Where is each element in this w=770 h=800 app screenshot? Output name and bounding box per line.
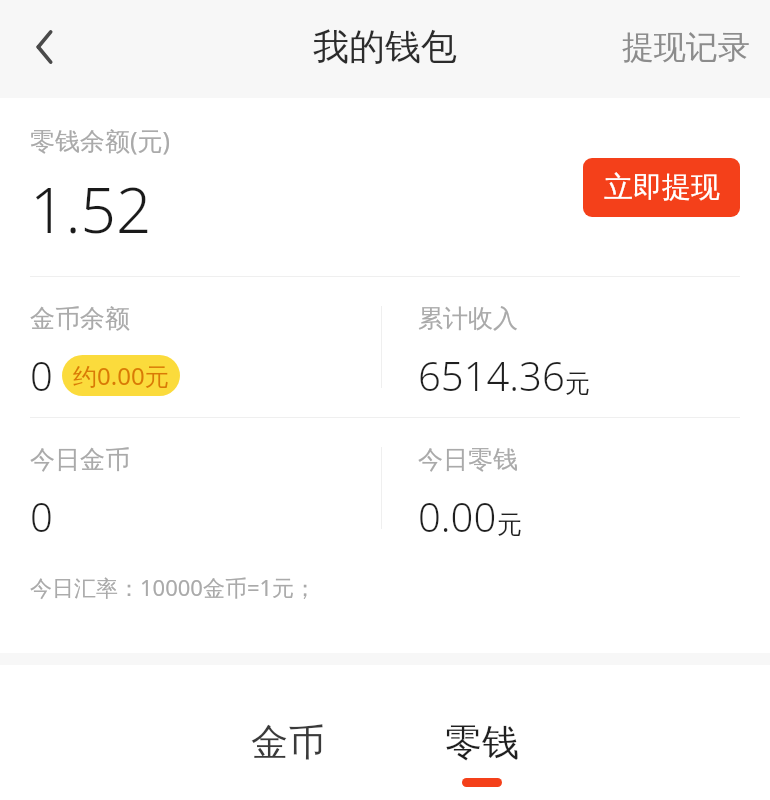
button[interactable]: 金币: [237, 715, 339, 791]
staticText: 我的钱包: [313, 24, 457, 69]
staticText: 零钱: [445, 719, 519, 766]
button[interactable]: Back: [14, 16, 76, 78]
button[interactable]: 提现记录: [602, 13, 770, 81]
staticText: 元: [565, 368, 590, 399]
staticText: 今日汇率：10000金币=1元；: [30, 572, 317, 602]
button[interactable]: 零钱: [431, 715, 533, 791]
staticText: 金币: [251, 719, 325, 766]
staticText: 零钱余额(元): [30, 123, 171, 157]
staticText: 立即提现: [604, 169, 720, 206]
staticText: 累计收入: [418, 303, 518, 334]
staticText: 元: [497, 509, 522, 540]
staticText: 提现记录: [622, 27, 750, 67]
staticText: 1.52: [30, 167, 152, 251]
staticText: 0.00: [418, 489, 497, 543]
staticText: 约0.00元: [73, 359, 169, 392]
staticText: 0: [30, 489, 53, 543]
staticText: 金币余额: [30, 303, 130, 334]
button[interactable]: 立即提现: [583, 158, 740, 217]
staticText: 6514.36: [418, 348, 565, 402]
staticText: 0: [30, 348, 53, 402]
staticText: 今日金币: [30, 444, 130, 475]
staticText: 今日零钱: [418, 444, 518, 475]
